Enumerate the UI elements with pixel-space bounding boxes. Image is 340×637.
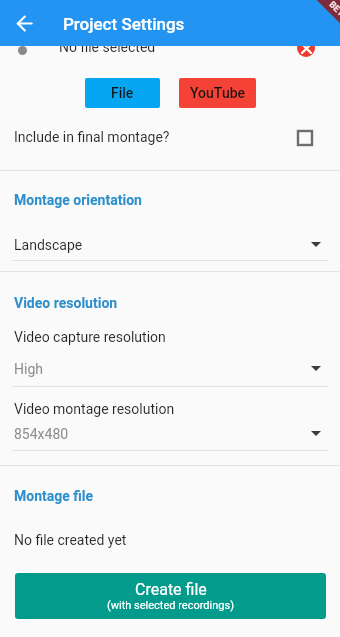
button[interactable]: Landscape (0, 233, 340, 264)
button[interactable]: No file selected (0, 34, 340, 58)
button[interactable]: YouTube (179, 78, 256, 108)
staticText: 854x480 (14, 426, 69, 442)
button[interactable]: File (85, 78, 160, 108)
staticText: Landscape (14, 237, 83, 253)
staticText: Video montage resolution (14, 401, 175, 417)
staticText: File (111, 85, 134, 101)
button[interactable]: 854x480 (0, 422, 340, 454)
staticText: (with selected recordings) (107, 599, 234, 612)
button[interactable]: Include in final montage? (0, 124, 340, 152)
staticText: Video capture resolution (14, 329, 166, 345)
button[interactable]: High (0, 357, 340, 390)
staticText: YouTube (190, 85, 246, 101)
staticText: No file selected (59, 39, 156, 55)
staticText: BETA (327, 0, 340, 23)
button[interactable]: Back (8, 7, 40, 39)
staticText: Create file (135, 580, 207, 599)
staticText: Include in final montage? (14, 129, 170, 145)
staticText: Video resolution (14, 295, 118, 311)
staticText: No file created yet (14, 532, 127, 548)
button[interactable]: Create file (15, 573, 326, 619)
staticText: Project Settings (63, 14, 185, 34)
staticText: Montage file (14, 488, 94, 504)
staticText: High (14, 361, 43, 377)
staticText: Montage orientation (14, 192, 142, 208)
